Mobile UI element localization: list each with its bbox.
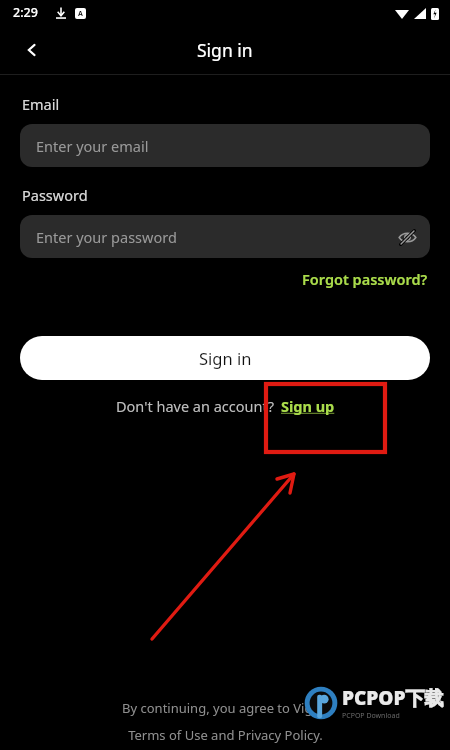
staticText: Sign up <box>281 396 335 416</box>
staticText: PCPOP Download <box>342 711 400 721</box>
button[interactable]: Enter your password <box>20 215 430 258</box>
button[interactable]: Forgot password? <box>300 267 430 291</box>
button[interactable]: Show password <box>392 222 422 252</box>
button[interactable]: Terms of Use and Privacy Policy. <box>128 726 323 744</box>
staticText: Sign in <box>199 347 252 369</box>
staticText: Terms of Use and Privacy Policy. <box>128 726 323 744</box>
staticText: Password <box>22 185 88 205</box>
staticText: 2:29 <box>13 4 38 21</box>
staticText: By continuing, you agree to Vigo's <box>122 699 329 717</box>
staticText: PCPOP下载 <box>342 685 444 711</box>
staticText: Sign in <box>197 38 253 62</box>
staticText: Enter your password <box>36 227 177 247</box>
button[interactable]: Sign up <box>281 394 335 418</box>
button[interactable]: Enter your email <box>20 124 430 167</box>
button[interactable]: Back <box>16 34 48 66</box>
button[interactable]: Sign in <box>20 336 430 380</box>
staticText: Don't have an account? <box>116 396 274 416</box>
staticText: Forgot password? <box>302 269 428 289</box>
staticText: Email <box>22 94 60 114</box>
staticText: A <box>78 9 83 19</box>
staticText: Enter your email <box>36 136 149 156</box>
